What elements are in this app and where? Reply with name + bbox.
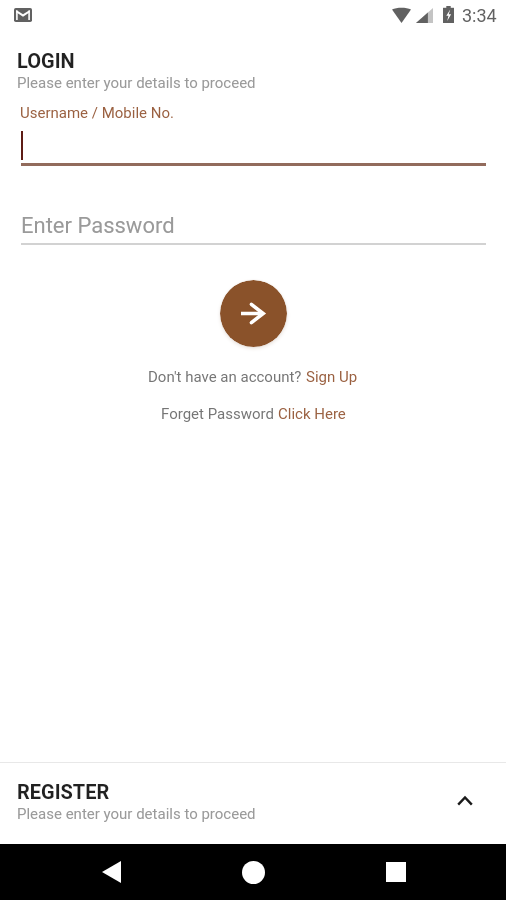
button[interactable]: Sign Up — [306, 368, 358, 386]
button[interactable]: Home — [229, 848, 277, 896]
button[interactable]: Recent apps — [372, 848, 420, 896]
staticText: LOGIN — [17, 49, 75, 72]
button[interactable]: Password input — [21, 205, 486, 245]
staticText: Click Here — [278, 405, 346, 423]
staticText: Sign Up — [306, 368, 358, 386]
staticText: Enter Password — [21, 213, 175, 239]
button[interactable] — [0, 762, 506, 844]
staticText: Please enter your details to proceed — [17, 805, 256, 823]
staticText: Don't have an account? — [148, 368, 306, 386]
button[interactable]: Click Here — [278, 405, 346, 423]
staticText: Forget Password — [161, 405, 278, 423]
staticText: REGISTER — [17, 780, 110, 803]
button[interactable]: Username / Mobile No. input — [21, 100, 486, 166]
button[interactable]: Submit login — [220, 280, 287, 347]
staticText: 3:34 — [462, 5, 497, 26]
button[interactable]: Back — [87, 848, 135, 896]
staticText: Please enter your details to proceed — [17, 74, 256, 92]
staticText: Username / Mobile No. — [20, 104, 174, 122]
